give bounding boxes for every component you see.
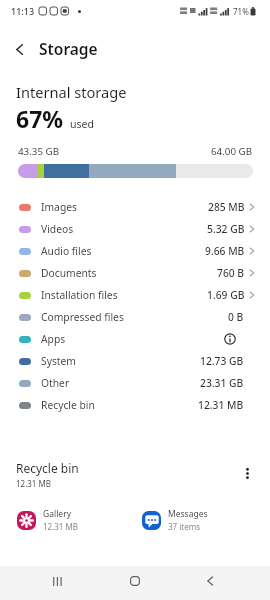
staticText: 12.31 MB: [43, 521, 78, 532]
staticText: Other: [41, 376, 70, 390]
button[interactable]: More options: [234, 460, 260, 486]
staticText: 23.31 GB: [200, 376, 244, 390]
button[interactable]: Recycle bin: [0, 394, 270, 416]
button[interactable]: Recent apps: [0, 566, 96, 600]
staticText: 64.00 GB: [211, 145, 253, 158]
staticText: 12.31 MB: [198, 398, 244, 412]
button[interactable]: Other: [0, 372, 270, 394]
staticText: 11:13: [11, 5, 35, 17]
staticText: Compressed files: [41, 310, 124, 324]
button[interactable]: Navigate up: [0, 27, 39, 71]
button[interactable]: Gallery: [17, 508, 78, 532]
staticText: 760 B: [217, 266, 245, 280]
staticText: Images: [41, 200, 77, 214]
staticText: 1.69 GB: [207, 288, 245, 302]
staticText: 5.32 GB: [207, 222, 245, 236]
button[interactable]: Videos: [0, 218, 270, 240]
staticText: 67%: [16, 103, 64, 134]
staticText: 12.31 MB: [16, 478, 51, 489]
staticText: 0 B: [228, 310, 244, 324]
staticText: Recycle bin: [41, 398, 95, 412]
button[interactable]: Home: [96, 566, 174, 600]
button[interactable]: Audio files: [0, 240, 270, 262]
staticText: Storage: [39, 38, 98, 59]
staticText: Recycle bin: [16, 460, 79, 476]
staticText: used: [70, 117, 94, 131]
staticText: Gallery: [43, 508, 71, 520]
button[interactable]: System: [0, 350, 270, 372]
button[interactable]: Apps: [0, 328, 270, 350]
staticText: 43.35 GB: [18, 145, 60, 158]
button[interactable]: Images: [0, 196, 270, 218]
staticText: 12.73 GB: [200, 354, 244, 368]
staticText: Installation files: [41, 288, 118, 302]
staticText: 37 items: [168, 521, 201, 532]
button[interactable]: Back: [174, 566, 270, 600]
button[interactable]: Compressed files: [0, 306, 270, 328]
staticText: Videos: [41, 222, 74, 236]
staticText: Apps: [41, 332, 66, 346]
staticText: 71%: [233, 6, 249, 17]
staticText: System: [41, 354, 76, 368]
staticText: Messages: [168, 508, 208, 520]
staticText: 9.66 MB: [205, 244, 245, 258]
staticText: Audio files: [41, 244, 92, 258]
staticText: Documents: [41, 266, 97, 280]
button[interactable]: Messages: [142, 508, 208, 532]
staticText: 285 MB: [208, 200, 245, 214]
button[interactable]: Documents: [0, 262, 270, 284]
staticText: Internal storage: [16, 82, 127, 102]
button[interactable]: Installation files: [0, 284, 270, 306]
